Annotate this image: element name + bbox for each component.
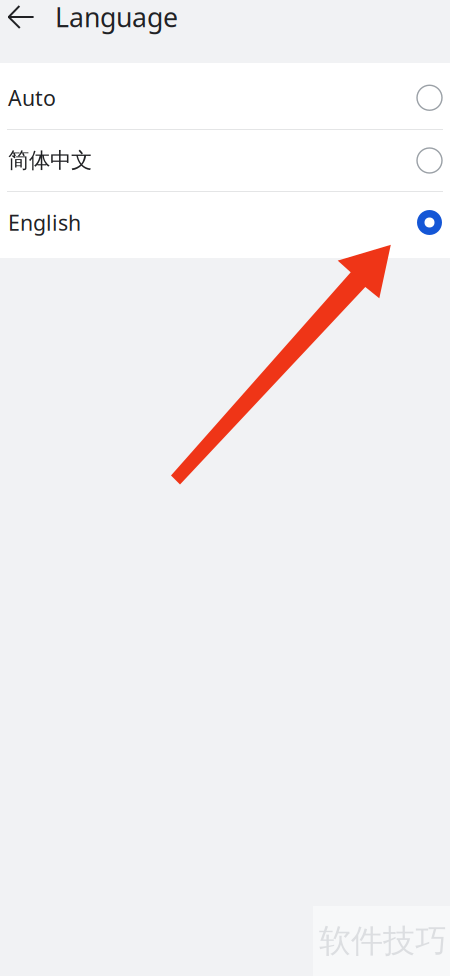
staticText: Language <box>55 0 178 35</box>
button[interactable]: English <box>0 192 450 258</box>
staticText: English <box>8 208 81 237</box>
button[interactable]: Auto <box>0 63 450 130</box>
button[interactable]: 简体中文 <box>0 130 450 192</box>
button[interactable]: Back <box>0 0 38 34</box>
staticText: Auto <box>8 84 56 112</box>
staticText: 简体中文 <box>8 147 92 174</box>
staticText: 软件技巧 <box>319 921 447 961</box>
